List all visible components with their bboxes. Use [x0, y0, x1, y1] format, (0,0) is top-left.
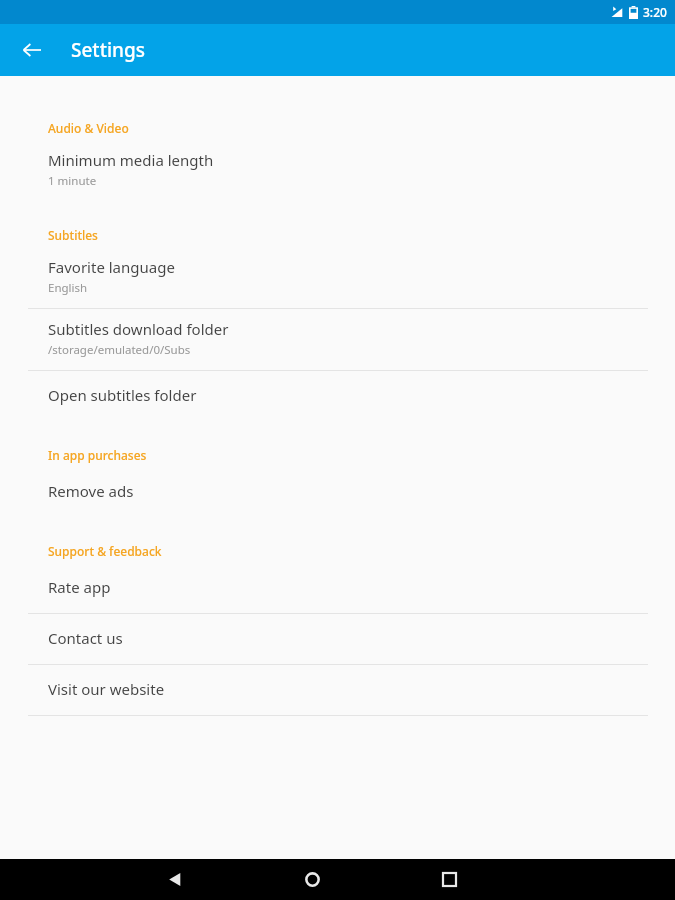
button[interactable]: Back [10, 28, 54, 72]
button[interactable]: Back [147, 859, 203, 900]
staticText: English [48, 280, 88, 296]
staticText: Subtitles download folder [48, 319, 229, 339]
staticText: 3:20 [643, 4, 667, 20]
staticText: /storage/emulated/0/Subs [48, 342, 191, 358]
button[interactable]: Remove ads [0, 467, 675, 517]
button[interactable]: Contact us [0, 614, 675, 664]
staticText: Visit our website [48, 679, 165, 699]
staticText: Open subtitles folder [48, 385, 197, 405]
button[interactable]: Visit our website [0, 665, 675, 715]
button[interactable]: Recent apps [421, 859, 477, 900]
button[interactable]: Subtitles download folder [0, 309, 675, 370]
staticText: Settings [71, 37, 145, 63]
staticText: Audio & Video [48, 120, 129, 136]
staticText: 1 minute [48, 173, 97, 189]
staticText: Remove ads [48, 481, 134, 501]
staticText: Contact us [48, 628, 123, 648]
staticText: Favorite language [48, 257, 175, 277]
staticText: Rate app [48, 577, 111, 597]
button[interactable]: Rate app [0, 563, 675, 613]
staticText: Subtitles [48, 227, 98, 243]
button[interactable]: Home [284, 859, 340, 900]
staticText: In app purchases [48, 447, 147, 463]
staticText: Support & feedback [48, 543, 162, 559]
button[interactable]: Open subtitles folder [0, 371, 675, 421]
button[interactable]: Minimum media length [0, 140, 675, 201]
button[interactable]: Favorite language [0, 247, 675, 308]
staticText: Minimum media length [48, 150, 214, 170]
